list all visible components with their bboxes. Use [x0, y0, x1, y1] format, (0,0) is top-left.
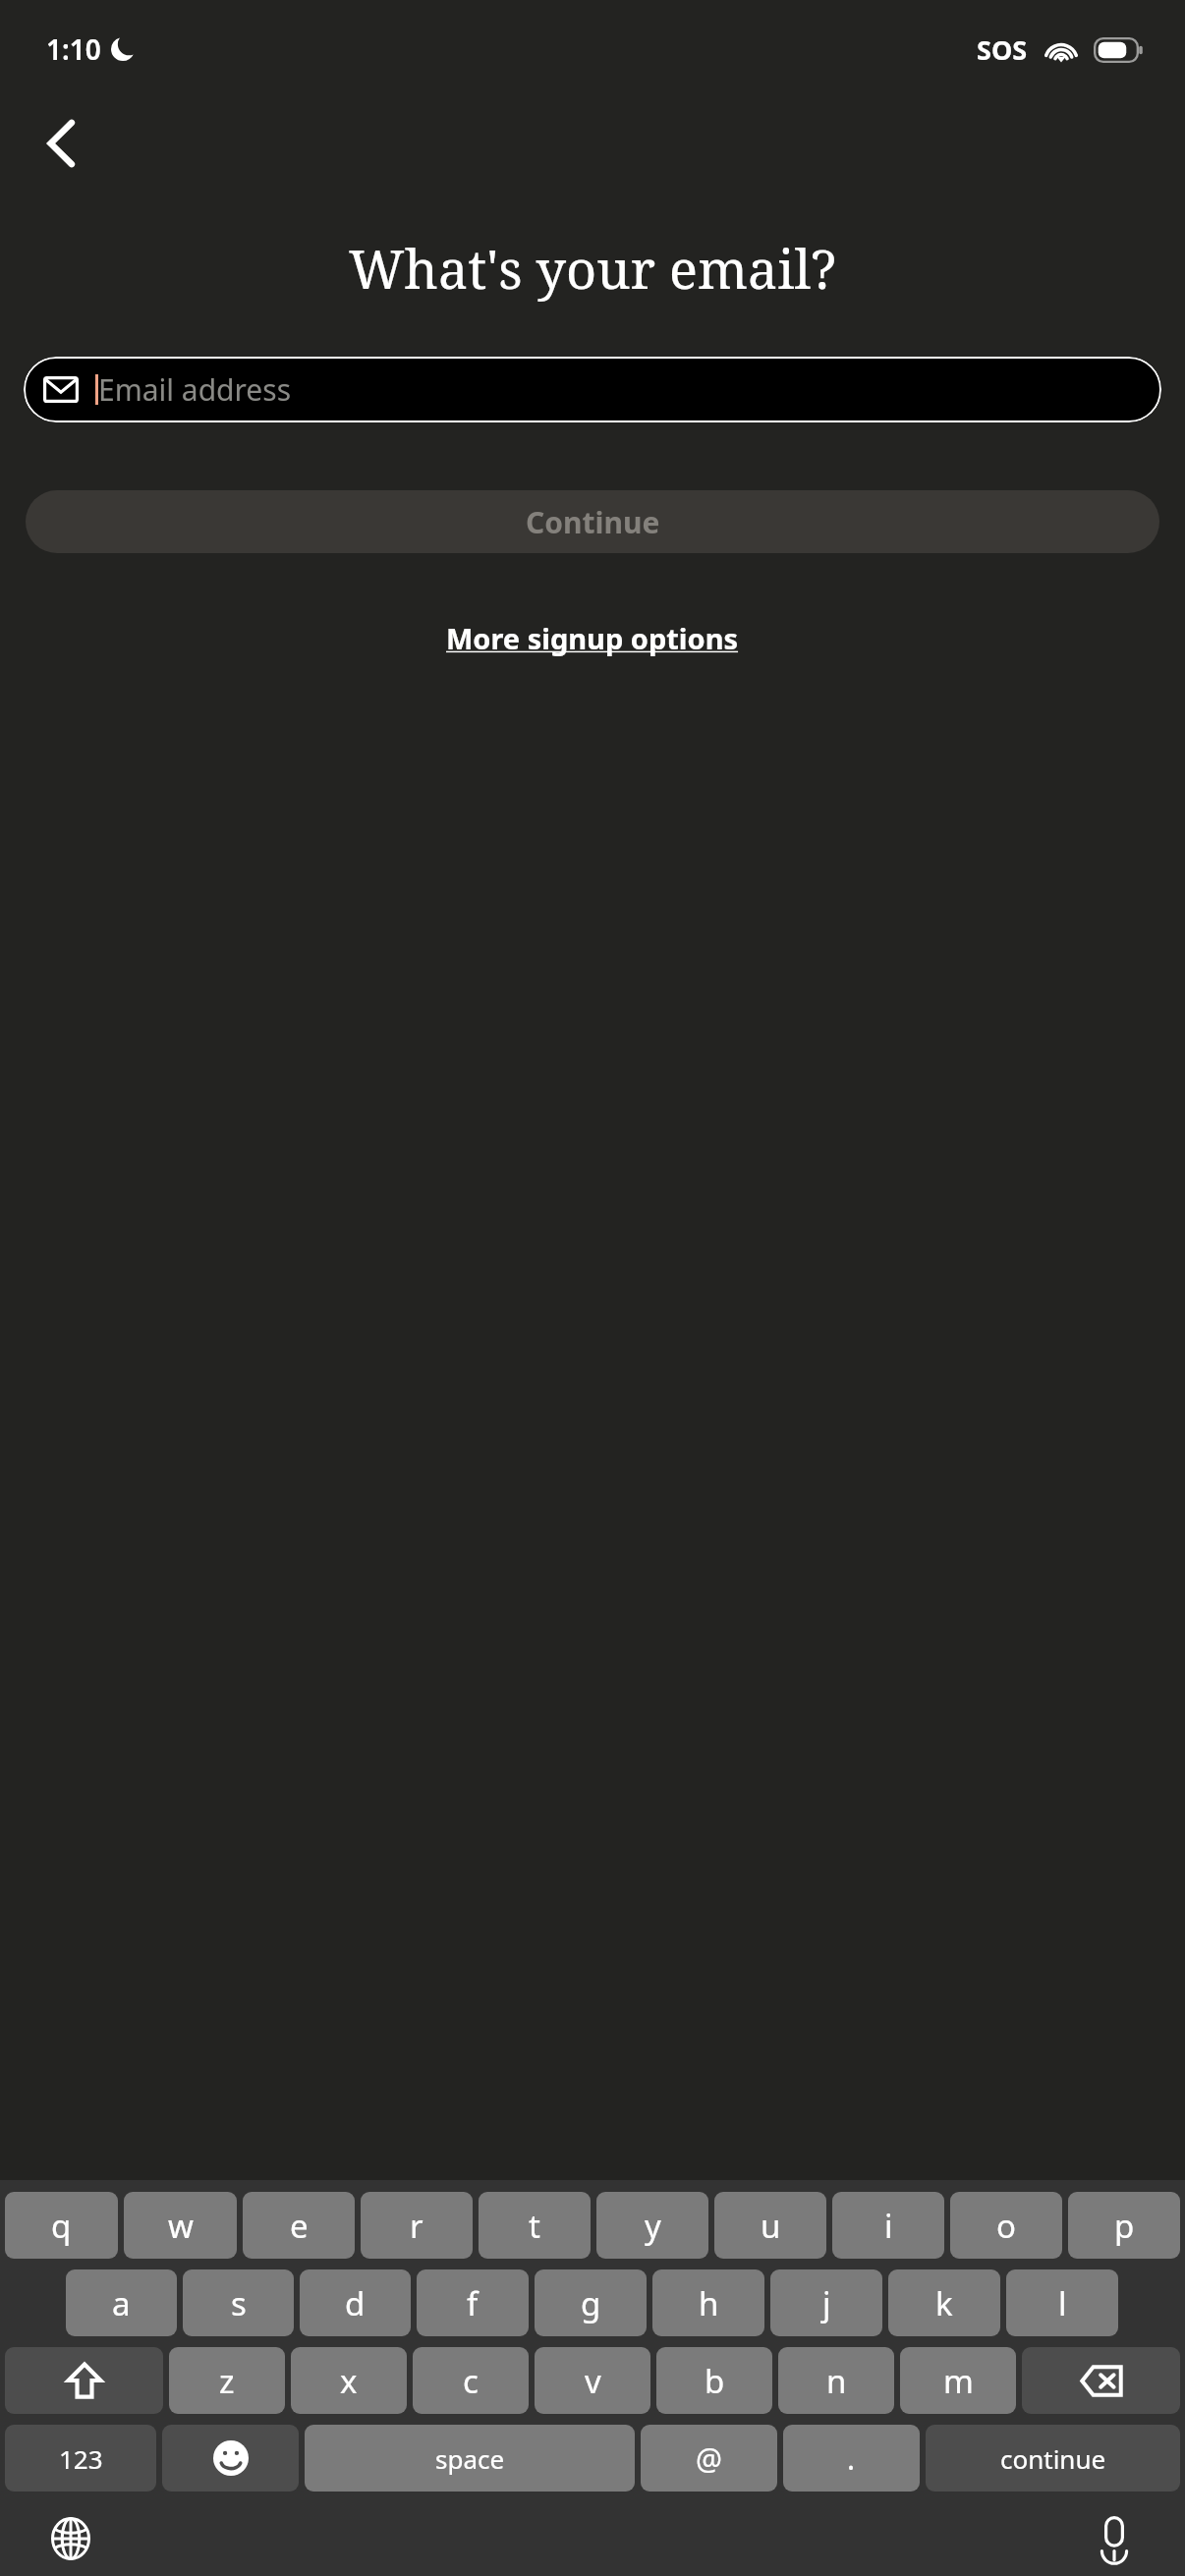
- staticText: f: [467, 2281, 479, 2325]
- staticText: 123: [59, 2441, 103, 2476]
- button[interactable]: o: [950, 2192, 1062, 2259]
- staticText: 1:10: [46, 30, 101, 68]
- button[interactable]: a: [66, 2269, 177, 2336]
- staticText: Continue: [526, 502, 660, 542]
- button[interactable]: c: [413, 2347, 529, 2414]
- button[interactable]: @: [641, 2425, 777, 2492]
- staticText: More signup options: [446, 619, 739, 657]
- button[interactable]: v: [535, 2347, 650, 2414]
- staticText: c: [463, 2359, 479, 2403]
- button[interactable]: Change keyboard language: [43, 2511, 98, 2566]
- button[interactable]: d: [300, 2269, 411, 2336]
- button[interactable]: Emoji: [162, 2425, 299, 2492]
- button[interactable]: t: [479, 2192, 591, 2259]
- staticText: w: [168, 2204, 194, 2248]
- button[interactable]: n: [778, 2347, 894, 2414]
- button[interactable]: More signup options: [432, 611, 753, 665]
- staticText: space: [435, 2441, 505, 2476]
- button[interactable]: Email address: [24, 357, 1161, 422]
- staticText: y: [645, 2204, 661, 2248]
- button[interactable]: x: [291, 2347, 407, 2414]
- button[interactable]: g: [535, 2269, 647, 2336]
- button[interactable]: continue: [926, 2425, 1180, 2492]
- button[interactable]: y: [596, 2192, 708, 2259]
- button[interactable]: h: [652, 2269, 764, 2336]
- staticText: e: [290, 2204, 309, 2248]
- staticText: j: [822, 2281, 831, 2325]
- button[interactable]: .: [783, 2425, 920, 2492]
- staticText: h: [699, 2281, 719, 2325]
- button[interactable]: u: [714, 2192, 826, 2259]
- button[interactable]: 123: [5, 2425, 156, 2492]
- staticText: d: [345, 2281, 366, 2325]
- staticText: .: [847, 2438, 856, 2479]
- staticText: o: [996, 2204, 1016, 2248]
- button[interactable]: m: [900, 2347, 1016, 2414]
- staticText: l: [1058, 2281, 1067, 2325]
- button[interactable]: w: [124, 2192, 237, 2259]
- staticText: g: [581, 2281, 601, 2325]
- staticText: k: [935, 2281, 953, 2325]
- button[interactable]: k: [888, 2269, 1000, 2336]
- staticText: What's your email?: [349, 232, 836, 305]
- staticText: m: [943, 2359, 974, 2403]
- button[interactable]: Shift: [5, 2347, 163, 2414]
- button[interactable]: j: [770, 2269, 882, 2336]
- button[interactable]: Back: [24, 106, 98, 181]
- staticText: r: [410, 2204, 423, 2248]
- button[interactable]: e: [243, 2192, 355, 2259]
- button[interactable]: b: [656, 2347, 772, 2414]
- staticText: x: [340, 2359, 358, 2403]
- button[interactable]: space: [305, 2425, 635, 2492]
- staticText: s: [231, 2281, 247, 2325]
- button[interactable]: z: [169, 2347, 285, 2414]
- button[interactable]: l: [1006, 2269, 1118, 2336]
- staticText: continue: [1000, 2441, 1106, 2476]
- staticText: i: [884, 2204, 893, 2248]
- button[interactable]: f: [417, 2269, 529, 2336]
- button[interactable]: p: [1068, 2192, 1180, 2259]
- staticText: SOS: [977, 31, 1028, 68]
- staticText: t: [529, 2204, 540, 2248]
- staticText: a: [112, 2281, 131, 2325]
- staticText: @: [696, 2438, 722, 2479]
- staticText: u: [761, 2204, 781, 2248]
- button[interactable]: i: [832, 2192, 944, 2259]
- staticText: p: [1114, 2204, 1135, 2248]
- button[interactable]: q: [5, 2192, 118, 2259]
- button[interactable]: s: [183, 2269, 294, 2336]
- staticText: b: [705, 2359, 725, 2403]
- staticText: v: [585, 2359, 601, 2403]
- staticText: n: [826, 2359, 847, 2403]
- button[interactable]: r: [361, 2192, 473, 2259]
- staticText: Email address: [98, 369, 292, 410]
- button[interactable]: Voice input: [1087, 2511, 1142, 2566]
- button[interactable]: Backspace: [1022, 2347, 1180, 2414]
- button[interactable]: Continue: [26, 490, 1159, 553]
- staticText: q: [51, 2204, 72, 2248]
- staticText: z: [219, 2359, 235, 2403]
